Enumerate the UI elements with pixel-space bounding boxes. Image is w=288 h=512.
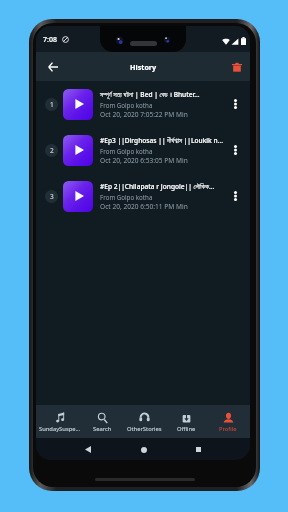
- staticText: History: [130, 62, 157, 72]
- button[interactable]: More options: [228, 93, 242, 115]
- staticText: From Golpo kotha: [100, 147, 153, 155]
- staticText: সম্পূর্ণ সত্য ঘটনা | Bed | বেড । Bhuter.…: [100, 90, 200, 99]
- staticText: #Ep3 ||Dirghosas || দীর্ঘশ্বাস ||Loukik …: [100, 136, 224, 145]
- button[interactable]: Back: [44, 58, 62, 76]
- button[interactable]: 3: [36, 173, 250, 219]
- button[interactable]: OtherStories: [123, 405, 165, 438]
- button[interactable]: Search: [81, 405, 123, 438]
- staticText: 7:08: [43, 35, 57, 45]
- staticText: Search: [93, 425, 112, 433]
- staticText: Offline: [177, 425, 196, 433]
- button[interactable]: 2: [36, 127, 250, 173]
- button[interactable]: SundaySuspe...: [39, 405, 81, 438]
- staticText: OtherStories: [127, 425, 162, 433]
- button[interactable]: Delete all: [228, 58, 246, 76]
- staticText: From Golpo kotha: [100, 193, 153, 201]
- staticText: Oct 20, 2020 6:53:05 PM Min: [100, 156, 188, 165]
- staticText: SundaySuspe...: [39, 425, 81, 433]
- button[interactable]: Offline: [165, 405, 207, 438]
- staticText: #Ep 2||Chilapata r Jongole|| লৌকিক...: [100, 182, 215, 191]
- staticText: 2: [50, 146, 54, 155]
- staticText: Oct 20, 2020 6:50:11 PM Min: [100, 202, 188, 211]
- staticText: From Golpo kotha: [100, 101, 153, 109]
- staticText: 1: [50, 100, 54, 109]
- button[interactable]: More options: [228, 139, 242, 161]
- staticText: 3: [50, 192, 54, 201]
- button[interactable]: Profile: [207, 405, 249, 438]
- staticText: Oct 20, 2020 7:05:22 PM Min: [100, 110, 188, 119]
- button[interactable]: More options: [228, 185, 242, 207]
- button[interactable]: 1: [36, 81, 250, 127]
- staticText: Profile: [219, 425, 237, 433]
